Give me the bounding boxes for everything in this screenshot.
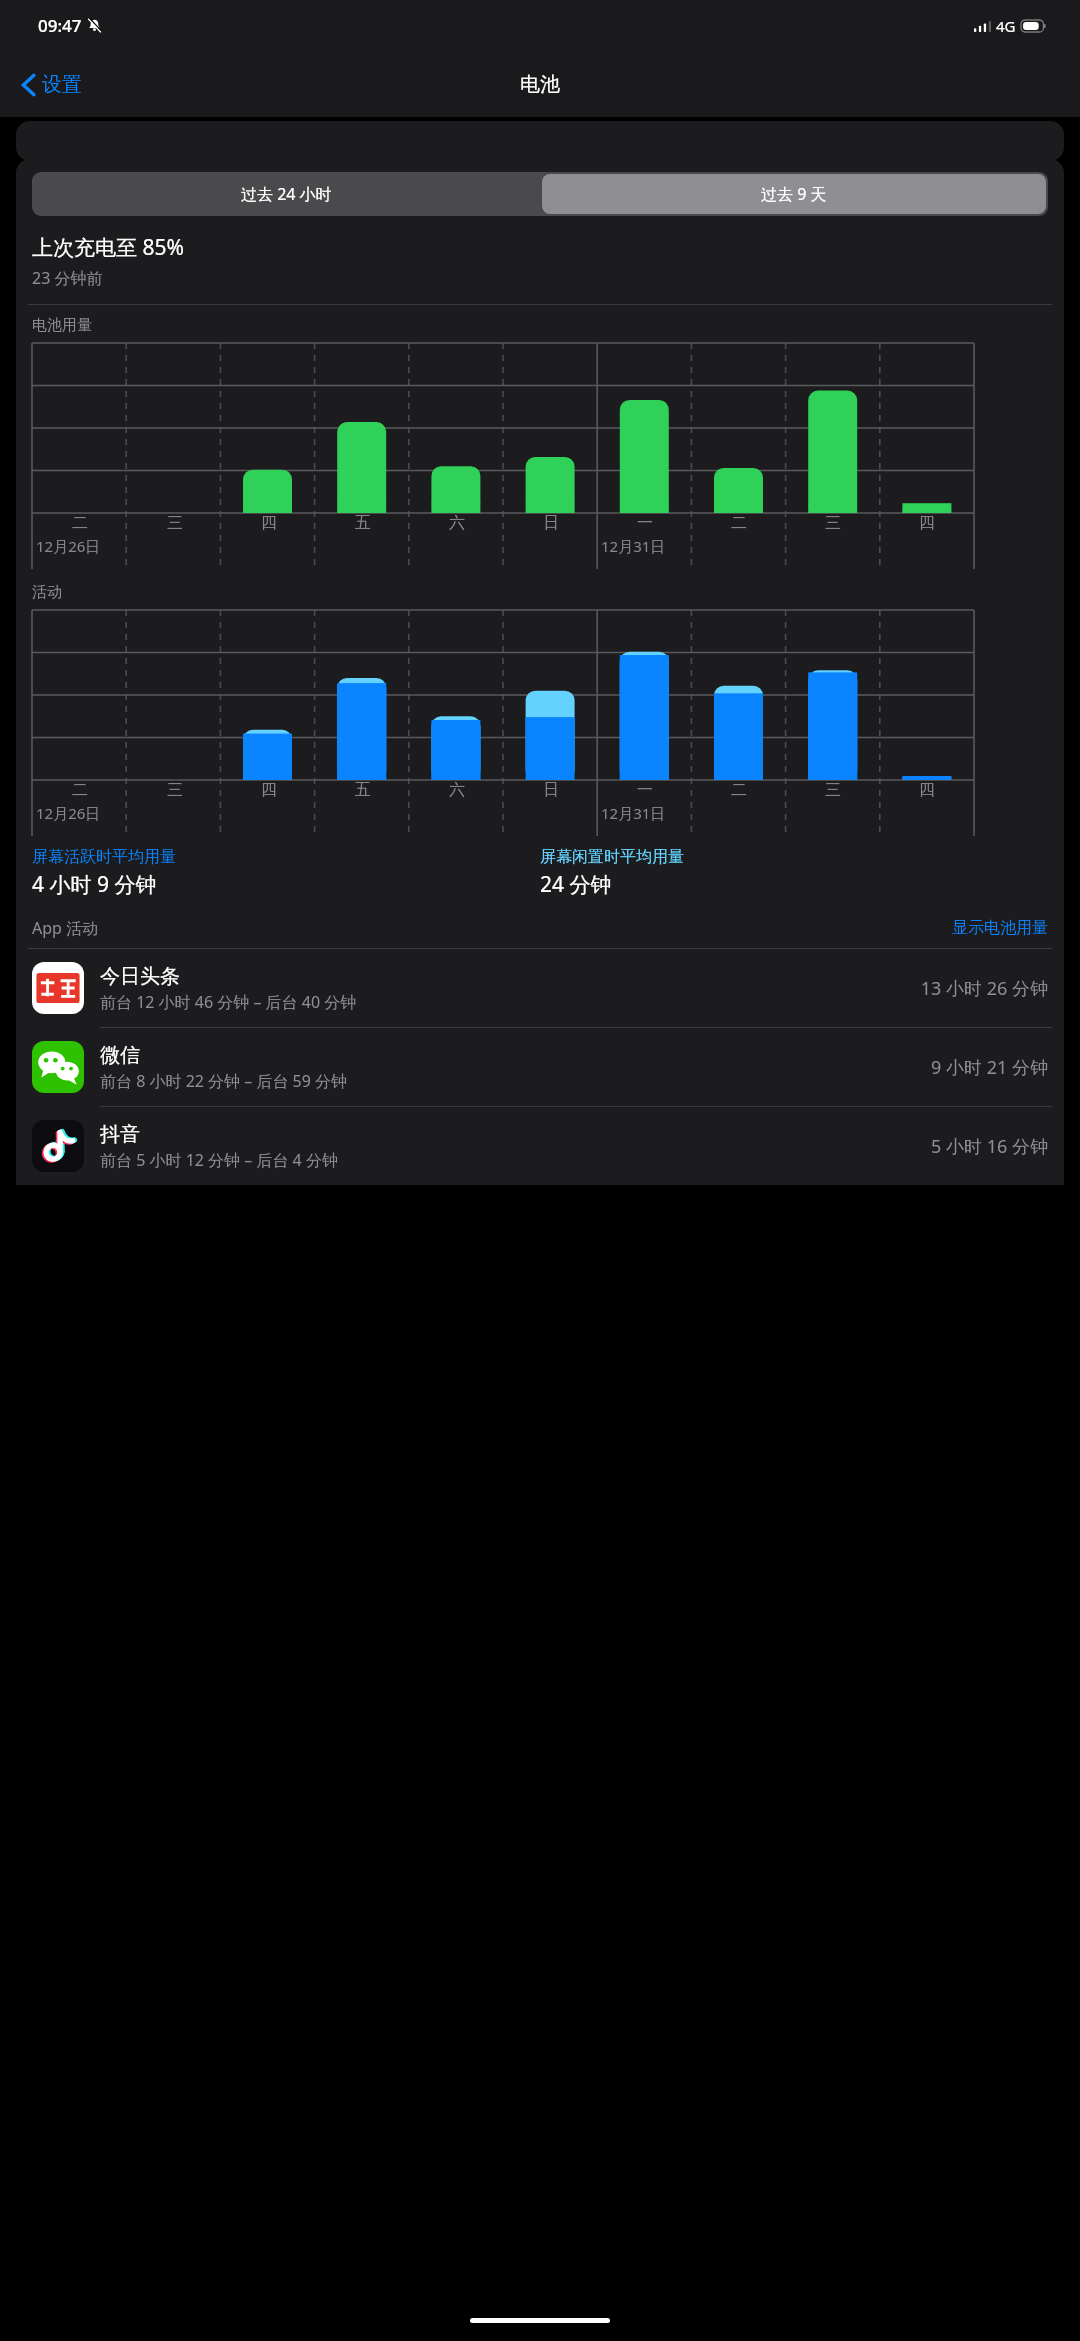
staticText: 二: [731, 513, 747, 533]
staticText: 日: [543, 513, 559, 533]
staticText: 五: [355, 513, 371, 533]
staticText: App 活动: [32, 917, 99, 939]
staticText: 屏幕闲置时平均用量: [540, 847, 684, 867]
staticText: 三: [167, 780, 183, 800]
button[interactable]: 过去 9 天: [542, 174, 1046, 214]
staticText: 9 小时 21 分钟: [931, 1055, 1048, 1080]
staticText: 六: [449, 780, 465, 800]
staticText: 四: [919, 780, 935, 800]
staticText: 前台 8 小时 22 分钟 – 后台 59 分钟: [100, 1070, 348, 1092]
button[interactable]: 设置: [14, 66, 90, 103]
staticText: 设置: [42, 72, 82, 97]
staticText: 电池用量: [32, 316, 92, 335]
staticText: 12月26日: [36, 803, 101, 823]
staticText: 四: [261, 513, 277, 533]
staticText: 四: [919, 513, 935, 533]
staticText: 上次充电至 85%: [32, 233, 184, 262]
button[interactable]: 微信: [16, 1028, 1064, 1107]
staticText: 过去 24 小时: [241, 183, 332, 205]
staticText: 12月31日: [601, 803, 666, 823]
staticText: 三: [825, 513, 841, 533]
staticText: 23 分钟前: [32, 267, 103, 289]
staticText: 二: [72, 513, 88, 533]
button[interactable]: 过去 24 小时: [32, 172, 540, 216]
staticText: 屏幕活跃时平均用量: [32, 847, 176, 867]
staticText: 活动: [32, 583, 62, 602]
staticText: 24 分钟: [540, 870, 612, 899]
staticText: 二: [731, 780, 747, 800]
staticText: 一: [637, 780, 653, 800]
staticText: 前台 5 小时 12 分钟 – 后台 4 分钟: [100, 1149, 338, 1171]
staticText: 六: [449, 513, 465, 533]
staticText: 五: [355, 780, 371, 800]
staticText: 四: [261, 780, 277, 800]
staticText: 4 小时 9 分钟: [32, 870, 157, 899]
staticText: 13 小时 26 分钟: [920, 976, 1048, 1001]
staticText: 抖音: [100, 1122, 140, 1147]
staticText: 三: [825, 780, 841, 800]
staticText: 今日头条: [100, 964, 180, 989]
staticText: 三: [167, 513, 183, 533]
staticText: 显示电池用量: [952, 918, 1048, 938]
staticText: 二: [72, 780, 88, 800]
staticText: 12月26日: [36, 536, 101, 556]
staticText: 电池: [520, 72, 560, 97]
button[interactable]: 抖音: [16, 1107, 1064, 1185]
staticText: 09:47: [38, 14, 82, 37]
staticText: 前台 12 小时 46 分钟 – 后台 40 分钟: [100, 991, 357, 1013]
button[interactable]: 显示电池用量: [952, 918, 1048, 938]
staticText: 微信: [100, 1043, 140, 1068]
staticText: 4G: [996, 16, 1016, 36]
staticText: 日: [543, 780, 559, 800]
staticText: 过去 9 天: [761, 183, 827, 205]
staticText: 12月31日: [601, 536, 666, 556]
staticText: 一: [637, 513, 653, 533]
button[interactable]: 今日头条: [16, 949, 1064, 1028]
staticText: 5 小时 16 分钟: [931, 1134, 1048, 1159]
